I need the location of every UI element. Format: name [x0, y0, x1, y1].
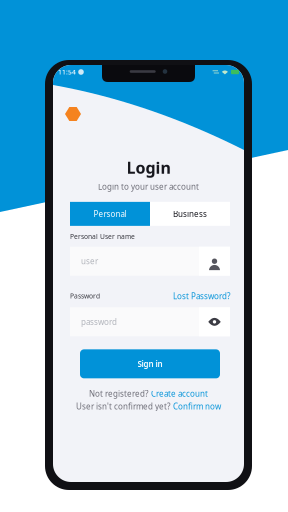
staticText: Create account: [151, 388, 208, 399]
staticText: 11:54: [58, 68, 76, 76]
staticText: Not registered?: [89, 388, 148, 399]
staticText: User isn't confirmed yet?: [76, 401, 170, 412]
staticText: user: [81, 256, 98, 266]
staticText: Lost Password?: [173, 291, 230, 301]
staticText: Sign in: [137, 358, 162, 369]
staticText: Login: [126, 157, 170, 178]
button[interactable]: Lost Password?: [173, 291, 230, 301]
button[interactable]: Sign in: [80, 349, 220, 378]
staticText: Personal User name: [70, 232, 135, 241]
staticText: Password: [70, 292, 100, 300]
button[interactable]: Personal: [70, 202, 150, 226]
staticText: Confirm now: [173, 401, 221, 412]
staticText: password: [81, 316, 117, 327]
button[interactable]: Business: [150, 202, 230, 226]
staticText: Personal: [93, 209, 126, 219]
staticText: Login to your user account: [98, 181, 199, 192]
staticText: Business: [173, 209, 207, 219]
button[interactable]: Create account: [151, 388, 208, 399]
button[interactable]: Confirm now: [173, 401, 221, 412]
